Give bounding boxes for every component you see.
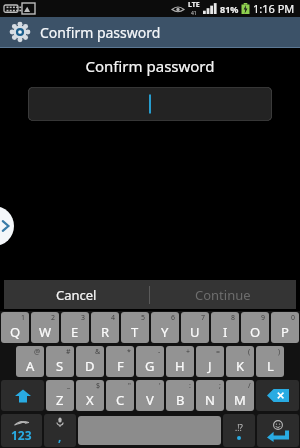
staticText: M	[234, 391, 246, 409]
staticText: 8	[231, 313, 236, 323]
button[interactable]	[28, 87, 272, 121]
staticText: S	[56, 357, 64, 375]
staticText: )	[278, 347, 281, 357]
staticText: H	[175, 357, 185, 375]
staticText: K	[236, 357, 245, 375]
staticText: 6	[171, 313, 176, 323]
staticText: $	[96, 381, 101, 391]
button[interactable]: *	[106, 346, 134, 377]
staticText: ,	[58, 428, 62, 444]
staticText: .!?	[235, 422, 243, 433]
staticText: 5	[141, 313, 146, 323]
staticText: 123	[11, 427, 32, 443]
staticText: G	[145, 357, 155, 375]
button[interactable]: #	[46, 346, 74, 377]
staticText: N	[205, 391, 215, 409]
button[interactable]: Period and symbols	[223, 414, 255, 447]
button[interactable]: -	[136, 346, 164, 377]
staticText: #	[66, 347, 71, 357]
staticText: D	[85, 357, 95, 375]
staticText: Y	[161, 323, 169, 341]
staticText: I	[223, 323, 228, 341]
staticText: -	[158, 347, 161, 357]
staticText: A	[26, 357, 35, 375]
staticText: F	[117, 357, 124, 375]
staticText: 9	[261, 313, 266, 323]
staticText: 1	[21, 313, 26, 323]
button[interactable]: $	[76, 380, 104, 411]
button[interactable]: 3	[61, 312, 89, 343]
button[interactable]: /	[226, 380, 254, 411]
button[interactable]: Continue	[150, 280, 296, 309]
button[interactable]: 5	[121, 312, 149, 343]
button[interactable]: 6	[151, 312, 179, 343]
staticText: J	[208, 357, 212, 375]
staticText: +	[186, 347, 191, 357]
staticText: LTE	[188, 0, 200, 10]
staticText: 0	[291, 313, 296, 323]
staticText: T	[131, 323, 139, 341]
button[interactable]: :	[166, 380, 194, 411]
other: Next hint	[0, 206, 14, 246]
staticText: _	[67, 381, 71, 391]
button[interactable]: Shift	[1, 380, 44, 411]
staticText: *	[127, 347, 131, 357]
staticText: Continue	[195, 286, 251, 304]
staticText: Z	[56, 391, 64, 409]
staticText: L	[267, 357, 274, 375]
button[interactable]: Enter	[257, 414, 299, 447]
staticText: Confirm password	[0, 56, 300, 76]
staticText: ;	[219, 381, 221, 391]
button[interactable]: _	[46, 380, 74, 411]
staticText: 2	[51, 313, 56, 323]
button[interactable]: 8	[211, 312, 239, 343]
staticText: =	[216, 347, 221, 357]
button[interactable]: Backspace	[256, 380, 299, 411]
button[interactable]: ;	[196, 380, 224, 411]
staticText: &	[95, 347, 101, 357]
staticText: 4	[111, 313, 116, 323]
button[interactable]: Comma and voice input	[44, 414, 76, 447]
button[interactable]: Cancel	[4, 280, 149, 309]
button[interactable]: @	[16, 346, 44, 377]
staticText: 41	[191, 10, 197, 17]
button[interactable]: 9	[241, 312, 269, 343]
button[interactable]: Numbers	[1, 414, 42, 447]
button[interactable]: +	[166, 346, 194, 377]
button[interactable]: 7	[181, 312, 209, 343]
button[interactable]: 1	[1, 312, 29, 343]
staticText: V	[146, 391, 154, 409]
button[interactable]: )	[256, 346, 284, 377]
button[interactable]: Space	[78, 416, 221, 445]
staticText: 81%	[220, 3, 239, 15]
staticText: R	[101, 323, 110, 341]
staticText: @	[34, 347, 41, 357]
staticText: Confirm password	[40, 23, 161, 42]
staticText: "	[128, 381, 131, 391]
other: Settings	[10, 22, 30, 42]
staticText: W	[39, 323, 52, 341]
button[interactable]: 0	[271, 312, 299, 343]
staticText: 3	[81, 313, 86, 323]
button[interactable]: 4	[91, 312, 119, 343]
staticText: B	[176, 391, 185, 409]
staticText: /	[248, 381, 251, 391]
staticText: 1:16 PM	[253, 1, 295, 16]
staticText: U	[190, 323, 200, 341]
staticText: 7	[201, 313, 206, 323]
staticText: (	[248, 347, 251, 357]
button[interactable]: "	[106, 380, 134, 411]
button[interactable]: &	[76, 346, 104, 377]
staticText: C	[116, 391, 125, 409]
staticText: O	[250, 323, 261, 341]
staticText: E	[71, 323, 79, 341]
button[interactable]: (	[226, 346, 254, 377]
staticText: Q	[10, 323, 21, 341]
button[interactable]: 2	[31, 312, 59, 343]
button[interactable]: =	[196, 346, 224, 377]
staticText: P	[281, 323, 289, 341]
staticText: '	[159, 381, 161, 391]
staticText: X	[86, 391, 94, 409]
button[interactable]: '	[136, 380, 164, 411]
staticText: Cancel	[56, 286, 97, 304]
